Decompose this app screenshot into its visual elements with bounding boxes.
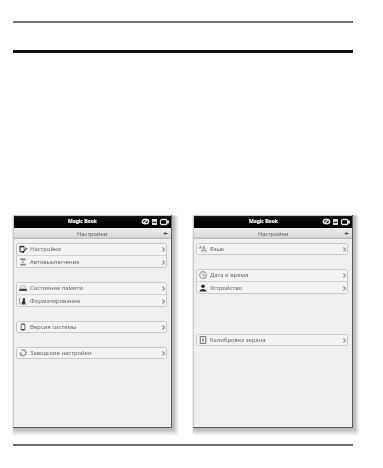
staticText: Magic Book bbox=[249, 218, 278, 225]
staticText: Дата и время bbox=[210, 271, 249, 279]
button[interactable]: Автовыключение bbox=[16, 256, 167, 268]
staticText: Magic Book bbox=[68, 218, 97, 225]
staticText: Форматирование bbox=[30, 297, 81, 305]
button[interactable]: Устройство bbox=[196, 282, 348, 294]
button[interactable]: Язык bbox=[196, 243, 348, 255]
staticText: Состояние памяти bbox=[30, 284, 83, 292]
staticText: Устройство bbox=[210, 284, 243, 292]
button[interactable]: Заводские настройки bbox=[16, 347, 167, 359]
staticText: Настройки bbox=[30, 245, 61, 253]
button[interactable]: Форматирование bbox=[16, 295, 167, 307]
staticText: Язык bbox=[210, 245, 225, 253]
staticText: Настройки bbox=[258, 230, 289, 238]
button[interactable]: Калибровка экрана bbox=[196, 334, 348, 346]
button[interactable]: Состояние памяти bbox=[16, 282, 167, 294]
staticText: Настройки bbox=[77, 230, 108, 238]
button[interactable]: Версия системы bbox=[16, 321, 167, 333]
button[interactable]: Настройки bbox=[16, 243, 167, 255]
staticText: Версия системы bbox=[30, 323, 77, 331]
button[interactable]: Дата и время bbox=[196, 269, 348, 281]
staticText: Калибровка экрана bbox=[210, 336, 266, 344]
staticText: Автовыключение bbox=[30, 258, 80, 266]
button[interactable]: Назад bbox=[163, 232, 168, 235]
button[interactable]: Назад bbox=[344, 232, 349, 235]
staticText: Заводские настройки bbox=[30, 349, 92, 357]
